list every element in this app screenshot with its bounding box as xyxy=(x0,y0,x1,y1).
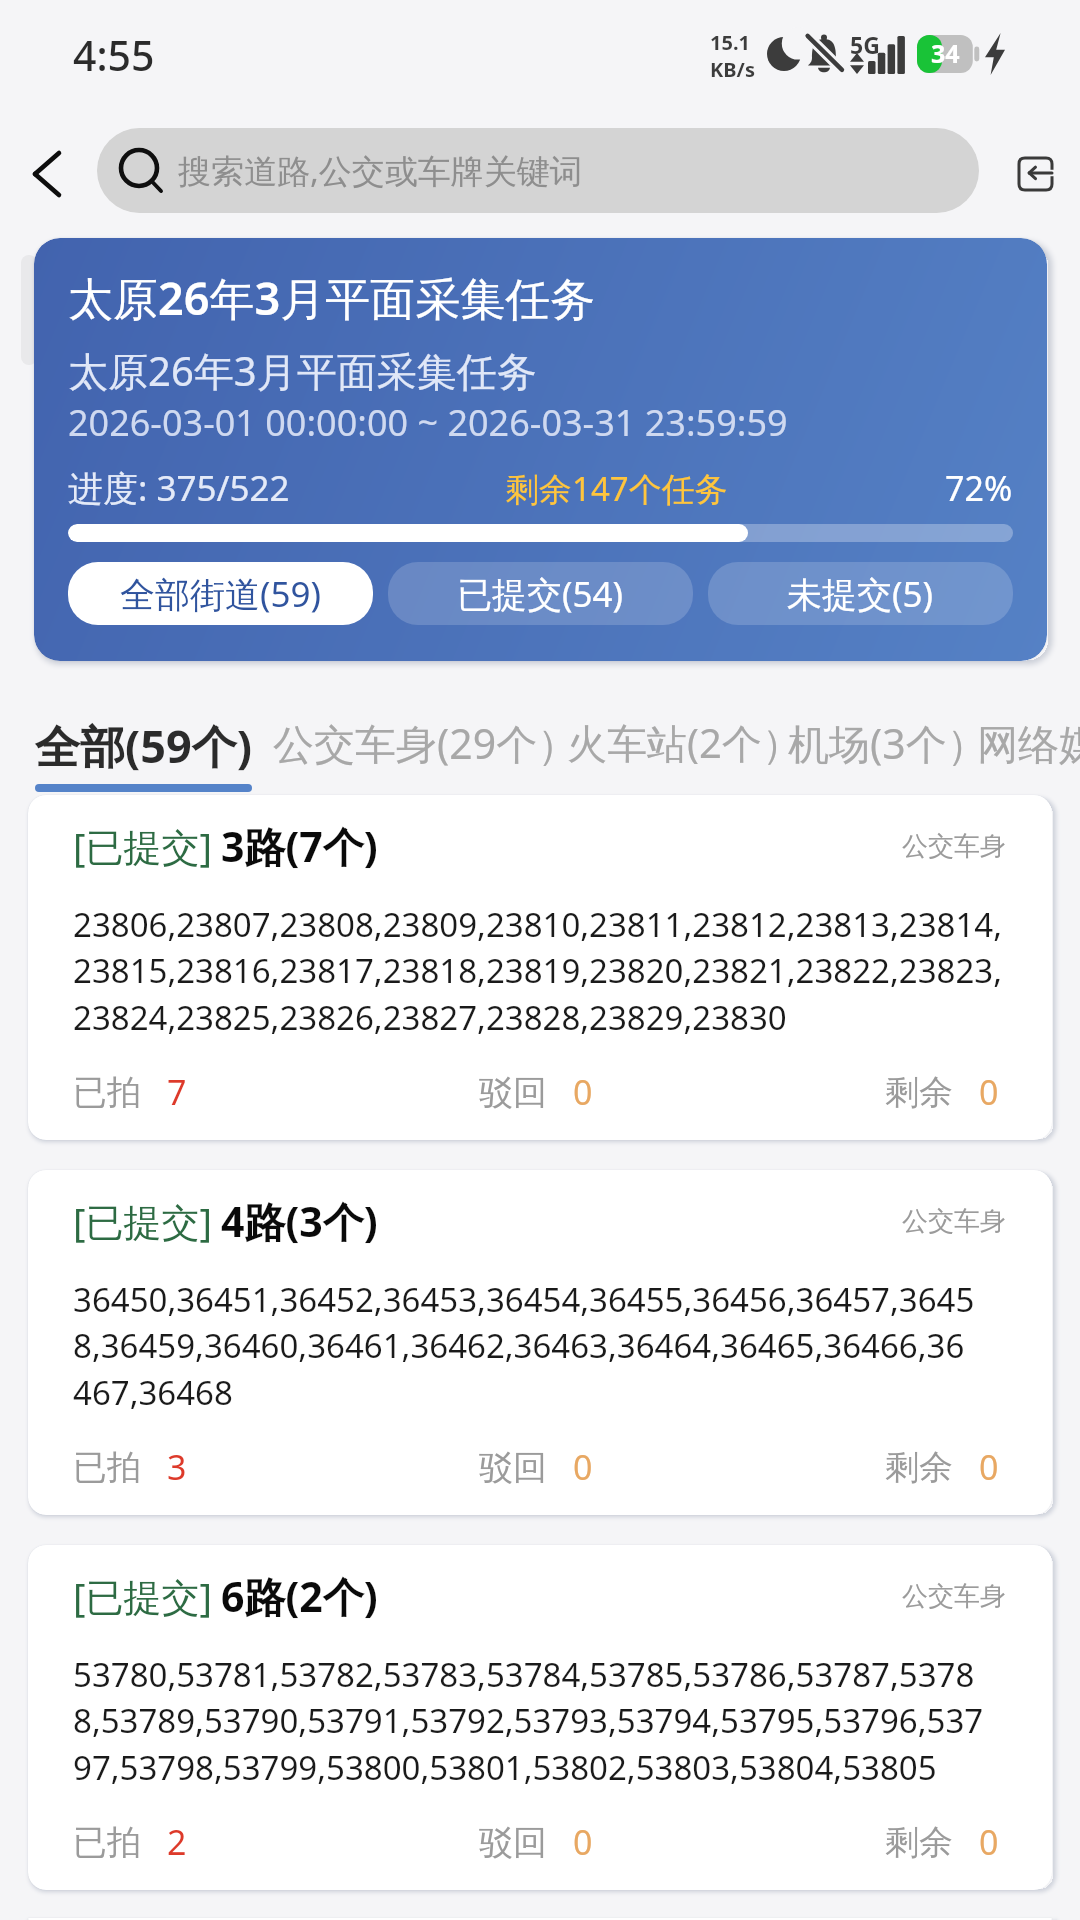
button[interactable]: 公交车身(29个） xyxy=(273,715,579,771)
staticText: 34 xyxy=(931,36,960,70)
staticText: 已拍 xyxy=(73,1821,141,1864)
button[interactable]: 全部(59个) xyxy=(35,715,252,776)
staticText: 剩余 xyxy=(885,1446,953,1489)
staticText: 0 xyxy=(573,1444,593,1490)
button[interactable]: Back xyxy=(5,120,89,228)
staticText: 公交车身(29个） xyxy=(273,715,579,771)
staticText: 0 xyxy=(979,1819,999,1865)
button[interactable]: 搜索道路,公交或车牌关键词 xyxy=(97,128,979,213)
staticText: 5G xyxy=(850,29,880,60)
staticText: [已提交] xyxy=(73,820,213,872)
staticText: 驳回 xyxy=(479,1071,547,1114)
button[interactable]: 全部街道(59) xyxy=(68,562,373,625)
staticText: 3 xyxy=(167,1444,187,1490)
staticText: 2 xyxy=(167,1819,187,1865)
staticText: 6路(2个) xyxy=(221,1568,378,1624)
staticText: 3路(7个) xyxy=(221,818,378,874)
staticText: 已拍 xyxy=(73,1071,141,1114)
staticText: 53780,53781,53782,53783,53784,53785,5378… xyxy=(73,1652,1006,1790)
staticText: 72% xyxy=(945,465,1013,511)
button[interactable]: Exit xyxy=(995,129,1075,219)
staticText: 0 xyxy=(979,1444,999,1490)
staticText: 进度: 375/522 xyxy=(68,464,290,512)
button[interactable]: [已提交] xyxy=(28,1170,1052,1515)
staticText: 已拍 xyxy=(73,1446,141,1489)
staticText: 7 xyxy=(167,1069,187,1115)
button[interactable]: 未提交(5) xyxy=(708,562,1013,625)
staticText: 2026-03-01 00:00:00 ~ 2026-03-31 23:59:5… xyxy=(68,398,788,447)
staticText: KB/s xyxy=(710,56,755,83)
staticText: 公交车身 xyxy=(902,1205,1006,1238)
staticText: 剩余 xyxy=(885,1821,953,1864)
staticText: 太原26年3月平面采集任务 xyxy=(68,267,596,328)
button[interactable]: 火车站(2个） xyxy=(567,715,802,770)
staticText: 未提交(5) xyxy=(787,570,934,618)
staticText: 0 xyxy=(573,1069,593,1115)
staticText: 搜索道路,公交或车牌关键词 xyxy=(178,148,583,193)
staticText: 网络媒体(6个） xyxy=(977,715,1080,771)
staticText: 剩余 xyxy=(885,1071,953,1114)
button[interactable]: 已提交(54) xyxy=(388,562,693,625)
staticText: 23806,23807,23808,23809,23810,23811,2381… xyxy=(73,902,1006,1040)
staticText: 剩余147个任务 xyxy=(506,466,728,511)
button[interactable]: 网络媒体(6个） xyxy=(977,715,1080,771)
staticText: 全部街道(59) xyxy=(120,570,322,618)
staticText: 0 xyxy=(573,1819,593,1865)
staticText: 公交车身 xyxy=(902,1580,1006,1613)
staticText: 15.1 xyxy=(710,29,750,56)
staticText: 机场(3个） xyxy=(788,715,988,771)
staticText: 已提交(54) xyxy=(457,570,624,618)
staticText: [已提交] xyxy=(73,1195,213,1247)
staticText: [已提交] xyxy=(73,1570,213,1622)
button[interactable]: 机场(3个） xyxy=(788,715,988,771)
button[interactable]: [已提交] xyxy=(28,795,1052,1140)
staticText: 4:55 xyxy=(73,27,155,83)
staticText: 驳回 xyxy=(479,1821,547,1864)
staticText: 太原26年3月平面采集任务 xyxy=(68,343,537,398)
staticText: 火车站(2个） xyxy=(567,715,802,770)
staticText: 驳回 xyxy=(479,1446,547,1489)
button[interactable]: 太原26年3月平面采集任务 xyxy=(34,238,1047,661)
staticText: 36450,36451,36452,36453,36454,36455,3645… xyxy=(73,1277,1006,1415)
button[interactable]: [已提交] xyxy=(28,1545,1052,1890)
staticText: 4路(3个) xyxy=(221,1193,378,1249)
staticText: 0 xyxy=(979,1069,999,1115)
staticText: 全部(59个) xyxy=(35,715,252,776)
staticText: 公交车身 xyxy=(902,830,1006,863)
